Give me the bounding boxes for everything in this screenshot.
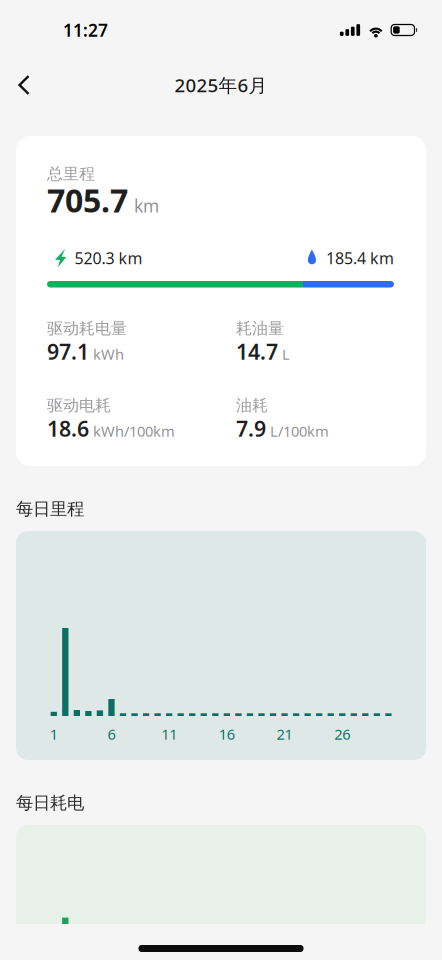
staticText: km: [134, 194, 159, 217]
staticText: 11: [161, 724, 177, 744]
staticText: 每日里程: [16, 498, 84, 520]
button[interactable]: Back: [2, 63, 46, 107]
staticText: 6: [107, 724, 115, 744]
staticText: 11:27: [63, 18, 108, 41]
staticText: 驱动耗电量: [47, 319, 127, 338]
staticText: 耗油量: [236, 319, 284, 338]
staticText: 16: [219, 724, 235, 744]
staticText: 185.4 km: [326, 247, 394, 269]
staticText: 油耗: [236, 396, 268, 415]
staticText: 7.9: [236, 414, 266, 443]
staticText: 驱动电耗: [47, 396, 111, 415]
staticText: 26: [334, 724, 350, 744]
staticText: 1: [50, 724, 58, 744]
staticText: 14.7: [236, 337, 278, 366]
staticText: L/100km: [270, 421, 329, 441]
staticText: 97.1: [47, 337, 89, 366]
staticText: 总里程: [47, 164, 95, 184]
staticText: 21: [277, 724, 293, 744]
staticText: 705.7: [47, 179, 128, 221]
staticText: 18.6: [47, 414, 89, 443]
staticText: 2025年6月: [174, 73, 267, 97]
staticText: L: [282, 344, 290, 364]
staticText: 每日耗电: [16, 792, 84, 814]
staticText: kWh: [93, 344, 124, 364]
staticText: 520.3 km: [74, 247, 142, 269]
staticText: kWh/100km: [93, 421, 175, 441]
